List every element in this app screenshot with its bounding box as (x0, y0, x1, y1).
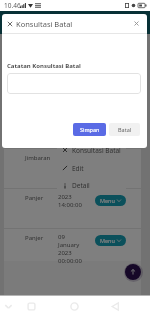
button[interactable] (7, 73, 141, 94)
button[interactable]: Konsultasi Batal (7, 19, 73, 29)
staticText: Jimbaran (25, 154, 51, 162)
button[interactable]: Simpan (73, 123, 106, 136)
button[interactable]: Detail (57, 177, 126, 194)
staticText: Menu (100, 237, 115, 244)
staticText: Detail (72, 181, 90, 190)
button[interactable]: Recent apps (25, 300, 38, 313)
staticText: Panjer (25, 234, 44, 242)
staticText: Catatan Konsultasi Batal (7, 62, 81, 70)
button[interactable]: Menu (95, 195, 126, 206)
button[interactable]: Edit (57, 159, 126, 177)
button[interactable]: Batal (109, 123, 140, 136)
staticText: 10.46 (4, 1, 21, 10)
staticText: Edit (72, 164, 84, 173)
button[interactable]: Jimbaran (0, 148, 150, 188)
staticText: Batal (118, 126, 132, 133)
staticText: 09 (58, 233, 65, 241)
staticText: Simpan (80, 126, 100, 133)
staticText: Menu (100, 197, 115, 204)
staticText: Panjer (25, 194, 44, 202)
button[interactable]: Home (68, 300, 81, 313)
button[interactable]: Panjer (0, 188, 150, 228)
button[interactable]: Panjer (0, 228, 150, 268)
button[interactable]: Close (131, 18, 142, 29)
button[interactable]: Back (109, 300, 122, 313)
staticText: 2023 (58, 193, 72, 201)
staticText: January (58, 241, 80, 249)
button[interactable]: Menu (95, 235, 126, 246)
staticText: 12:00:00 (58, 161, 82, 169)
staticText: 00:00:00 (58, 257, 82, 265)
staticText: 14:00:00 (58, 201, 82, 209)
button[interactable]: Konsultasi Batal (57, 141, 126, 159)
staticText: Konsultasi Batal (72, 146, 121, 155)
staticText: Konsultasi Batal (16, 19, 73, 29)
button[interactable]: Hide keyboard (2, 300, 15, 313)
staticText: 2023 (58, 249, 72, 257)
button[interactable]: Scroll to top (125, 264, 141, 280)
